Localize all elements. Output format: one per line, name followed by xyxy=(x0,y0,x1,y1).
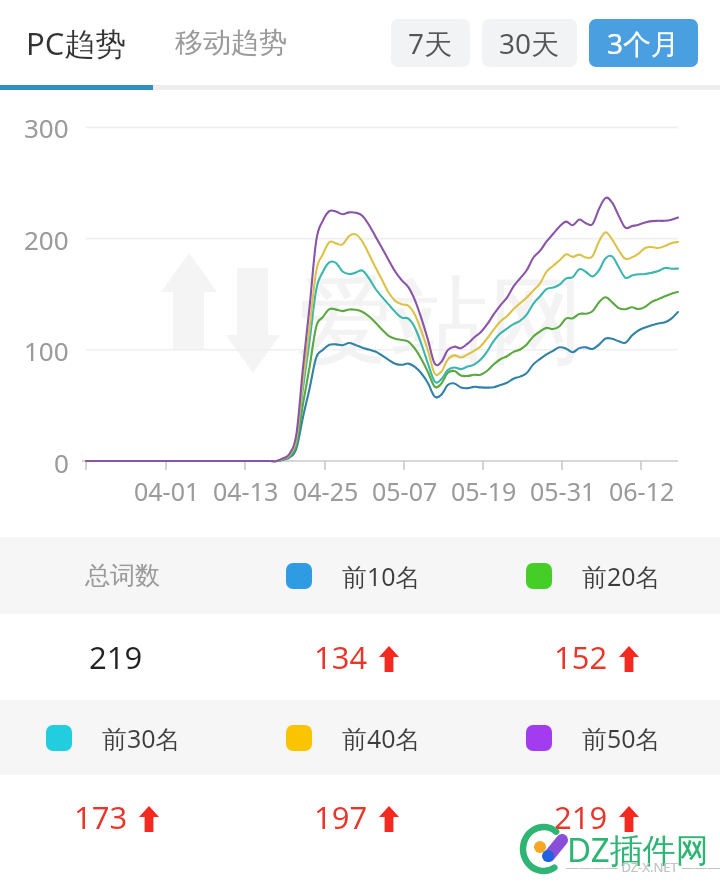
staticText: 300 xyxy=(24,110,69,145)
button[interactable]: 219 xyxy=(0,614,240,700)
button[interactable]: 197 xyxy=(240,775,480,858)
button[interactable]: 前50名 xyxy=(480,700,720,775)
button[interactable]: 30天 xyxy=(482,19,577,67)
button[interactable]: 219 xyxy=(480,775,720,858)
staticText: 05-31 xyxy=(530,474,596,508)
staticText: 前50名 xyxy=(582,721,661,755)
staticText: 移动趋势 xyxy=(175,25,287,60)
staticText: 219 xyxy=(89,636,143,678)
staticText: 7天 xyxy=(408,24,453,62)
staticText: 200 xyxy=(24,222,69,257)
staticText: 152 xyxy=(554,636,608,678)
staticText: 前20名 xyxy=(582,559,661,593)
staticText: 3个月 xyxy=(607,24,680,62)
staticText: 爱站网 xyxy=(296,262,584,383)
button[interactable]: 173 xyxy=(0,775,240,858)
button[interactable]: 前10名 xyxy=(240,537,480,614)
staticText: 05-07 xyxy=(372,474,438,508)
button[interactable]: 前20名 xyxy=(480,537,720,614)
staticText: DZ插件网 xyxy=(567,827,709,872)
staticText: ———— DZ-X.NET ———— xyxy=(566,858,720,876)
staticText: 04-01 xyxy=(134,474,200,508)
staticText: 0 xyxy=(54,445,69,480)
staticText: 05-19 xyxy=(451,474,517,508)
staticText: 前10名 xyxy=(342,559,421,593)
staticText: 134 xyxy=(314,636,368,678)
staticText: 总词数 xyxy=(85,560,160,591)
button[interactable]: PC趋势 xyxy=(0,0,153,85)
button[interactable]: 总词数 xyxy=(0,537,240,614)
staticText: 197 xyxy=(314,796,368,838)
staticText: 173 xyxy=(74,796,128,838)
button[interactable]: 152 xyxy=(480,614,720,700)
staticText: 04-13 xyxy=(213,474,279,508)
button[interactable]: 7天 xyxy=(391,19,470,67)
staticText: 前40名 xyxy=(342,721,421,755)
staticText: 04-25 xyxy=(293,474,359,508)
button[interactable]: 移动趋势 xyxy=(153,0,308,85)
staticText: 06-12 xyxy=(609,474,675,508)
staticText: 30天 xyxy=(499,24,560,62)
button[interactable]: 134 xyxy=(240,614,480,700)
button[interactable]: 3个月 xyxy=(589,19,698,67)
staticText: 219 xyxy=(554,796,608,838)
staticText: 100 xyxy=(24,333,69,368)
button[interactable]: 前40名 xyxy=(240,700,480,775)
staticText: 前30名 xyxy=(102,721,181,755)
button[interactable]: 前30名 xyxy=(0,700,240,775)
staticText: PC趋势 xyxy=(26,22,127,64)
